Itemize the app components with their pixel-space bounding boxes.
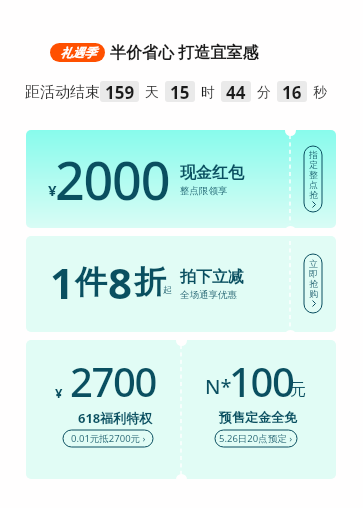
- button[interactable]: 0.01元抵2700元 ›: [63, 430, 153, 447]
- staticText: 半价省心 打造宜室感: [110, 41, 259, 63]
- staticText: ¥: [48, 180, 57, 200]
- staticText: 2000: [55, 144, 170, 215]
- staticText: 8: [108, 254, 133, 311]
- button[interactable]: 指定整点抢: [304, 146, 322, 212]
- button[interactable]: 立即抢购: [304, 254, 322, 313]
- staticText: 折: [134, 262, 166, 302]
- button[interactable]: 5.26日20点预定 ›: [215, 430, 297, 447]
- staticText: 天: [145, 84, 159, 102]
- staticText: 预售定金全免: [219, 409, 297, 425]
- staticText: 5.26日20点预定 ›: [219, 432, 293, 445]
- staticText: 0.01元抵2700元 ›: [71, 432, 146, 445]
- staticText: 1: [50, 254, 75, 311]
- staticText: 起: [163, 284, 172, 295]
- staticText: 分: [257, 84, 271, 102]
- staticText: 购: [309, 288, 318, 298]
- staticText: 100: [229, 354, 294, 408]
- staticText: ¥: [55, 384, 63, 402]
- staticText: 即: [309, 268, 318, 278]
- staticText: 抢: [309, 189, 318, 199]
- staticText: 整: [309, 169, 318, 179]
- staticText: 159: [105, 81, 135, 102]
- staticText: 抢: [309, 278, 318, 288]
- staticText: 指: [309, 149, 318, 159]
- staticText: 15: [170, 81, 190, 102]
- staticText: 秒: [313, 84, 327, 102]
- staticText: 全场通享优惠: [180, 289, 237, 301]
- staticText: 16: [282, 81, 302, 102]
- button[interactable]: ¥: [26, 340, 181, 479]
- button[interactable]: 礼遇季: [50, 43, 105, 62]
- staticText: 整点限领享: [180, 185, 228, 197]
- button[interactable]: 1: [26, 236, 336, 332]
- staticText: 618福利特权: [78, 409, 153, 427]
- staticText: 拍下立减: [180, 267, 244, 287]
- staticText: 现金红包: [180, 163, 244, 183]
- staticText: 时: [201, 84, 215, 102]
- staticText: 件: [75, 262, 107, 302]
- staticText: 点: [309, 179, 318, 189]
- staticText: N*: [205, 373, 232, 400]
- staticText: 礼遇季: [60, 45, 96, 60]
- staticText: 元: [290, 380, 306, 400]
- staticText: 定: [309, 159, 318, 169]
- staticText: 距活动结束: [25, 83, 100, 102]
- staticText: 立: [309, 258, 318, 268]
- button[interactable]: ¥: [26, 130, 336, 228]
- staticText: 44: [226, 81, 246, 102]
- staticText: 2700: [70, 354, 156, 408]
- button[interactable]: N*: [181, 340, 336, 479]
